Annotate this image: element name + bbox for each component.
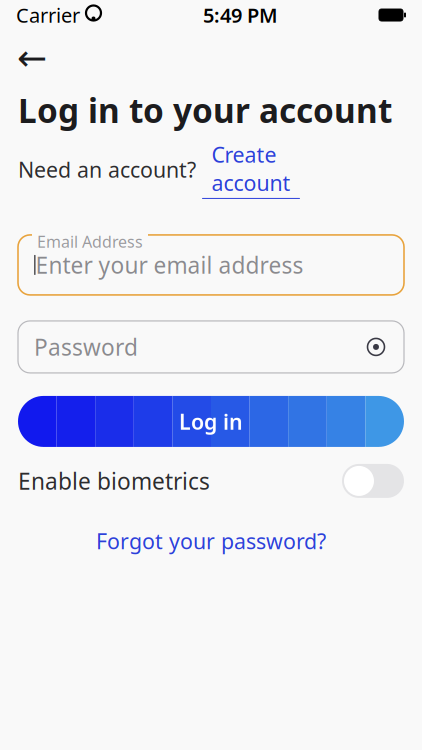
staticText: Email Address	[37, 231, 143, 252]
staticText: ←	[17, 38, 47, 78]
button[interactable]: Log in	[18, 396, 404, 447]
staticText: Create account	[211, 140, 290, 197]
staticText: 5:49 PM	[203, 2, 278, 28]
staticText: Enter your email address	[36, 250, 304, 280]
button[interactable]: Forgot your password?	[84, 519, 338, 563]
staticText: Carrier	[16, 2, 80, 28]
staticText: Need an account?	[18, 155, 196, 184]
staticText: Password	[34, 332, 138, 362]
staticText: Log in	[179, 407, 243, 436]
button[interactable]: Password	[18, 321, 404, 373]
staticText: Log in to your account	[18, 88, 392, 132]
button[interactable]: Create account	[202, 140, 300, 199]
button[interactable]: Email Address	[18, 235, 404, 295]
button[interactable]: Back	[10, 38, 54, 78]
staticText: Enable biometrics	[18, 466, 210, 496]
button[interactable]: Enable biometrics	[0, 459, 422, 503]
staticText: Forgot your password?	[96, 527, 326, 555]
